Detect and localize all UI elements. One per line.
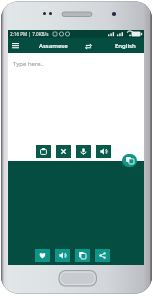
button[interactable]: Assamese [35, 38, 71, 53]
button[interactable]: Copy [36, 145, 51, 158]
button[interactable]: Menu [9, 39, 22, 52]
button[interactable]: Voice input [76, 145, 91, 158]
button[interactable]: Share [95, 249, 110, 262]
button[interactable]: Copy [75, 249, 90, 262]
staticText: Assamese [39, 42, 68, 50]
button[interactable]: English [110, 38, 141, 53]
button[interactable]: Speak [55, 249, 70, 262]
button[interactable]: Favorite [35, 249, 50, 262]
button[interactable]: Clear [56, 145, 71, 158]
staticText: English [115, 42, 136, 50]
staticText: Type here.. [13, 60, 44, 68]
button[interactable]: Conversation mode [122, 154, 137, 167]
button[interactable]: Speak [96, 145, 111, 158]
button[interactable]: Swap languages [82, 40, 94, 52]
staticText: 2:16 PM | 7.0KB/s [10, 31, 49, 37]
